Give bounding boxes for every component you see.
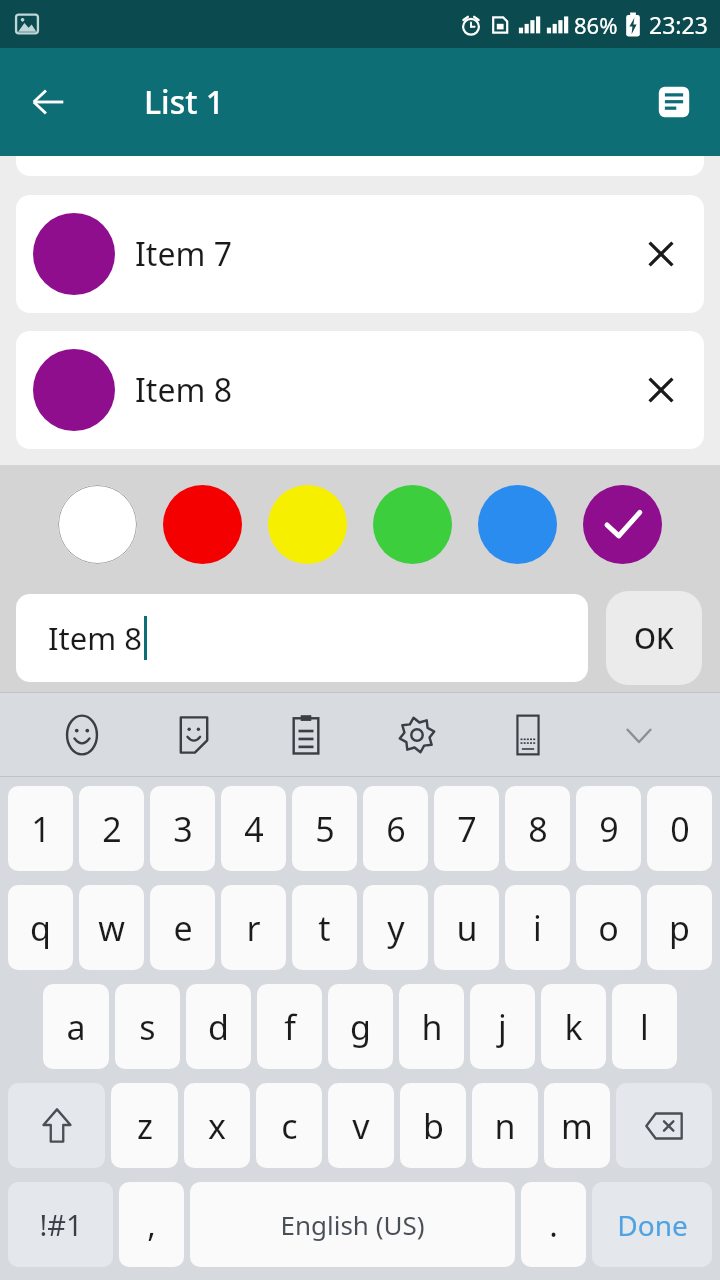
staticText: v <box>352 1103 370 1149</box>
staticText: 3 <box>173 806 193 852</box>
button[interactable]: OK <box>606 591 702 685</box>
button[interactable]: Settings <box>361 692 472 777</box>
button[interactable]: 2 <box>79 786 144 871</box>
button[interactable]: English (US) <box>190 1182 515 1267</box>
staticText: 86% <box>574 10 618 40</box>
staticText: 9 <box>599 806 619 852</box>
button[interactable]: f <box>257 984 322 1069</box>
button[interactable]: l <box>612 984 677 1069</box>
button[interactable]: Item 7 <box>16 195 704 313</box>
button[interactable]: 4 <box>221 786 286 871</box>
staticText: Item 7 <box>135 232 626 276</box>
button[interactable]: v <box>328 1083 394 1168</box>
button[interactable]: w <box>79 885 144 970</box>
button[interactable]: 5 <box>292 786 357 871</box>
staticText: English (US) <box>280 1207 425 1242</box>
staticText: a <box>66 1004 86 1050</box>
staticText: , <box>147 1203 156 1247</box>
button[interactable]: c <box>256 1083 322 1168</box>
staticText: 1 <box>31 806 51 852</box>
button[interactable]: q <box>8 885 73 970</box>
button[interactable]: Color 4 <box>373 485 452 564</box>
staticText: p <box>669 905 690 951</box>
staticText: t <box>318 905 331 951</box>
button[interactable]: s <box>115 984 180 1069</box>
staticText: !#1 <box>39 1205 83 1244</box>
staticText: Item 8 <box>135 368 626 412</box>
button[interactable]: 6 <box>363 786 428 871</box>
staticText: 8 <box>528 806 548 852</box>
staticText: o <box>598 905 619 951</box>
staticText: n <box>494 1103 516 1149</box>
button[interactable]: 0 <box>647 786 712 871</box>
staticText: Done <box>617 1206 688 1244</box>
button[interactable]: Emoji <box>26 692 138 777</box>
button[interactable]: i <box>505 885 570 970</box>
button[interactable]: Keyboard modes <box>472 692 583 777</box>
button[interactable]: z <box>111 1083 178 1168</box>
button[interactable]: u <box>434 885 499 970</box>
button[interactable]: m <box>544 1083 610 1168</box>
staticText: g <box>350 1004 371 1050</box>
staticText: r <box>246 905 261 951</box>
staticText: 5 <box>315 806 335 852</box>
button[interactable]: Hide keyboard <box>583 692 694 777</box>
button[interactable]: h <box>399 984 464 1069</box>
button[interactable]: a <box>43 984 109 1069</box>
button[interactable]: Item 8 <box>16 594 588 682</box>
button[interactable]: Done <box>592 1182 712 1267</box>
button[interactable]: 3 <box>150 786 215 871</box>
button[interactable]: . <box>521 1182 586 1267</box>
staticText: u <box>456 905 478 951</box>
button[interactable]: Delete Item 7 <box>626 219 696 289</box>
button[interactable]: p <box>647 885 712 970</box>
button[interactable]: j <box>470 984 535 1069</box>
staticText: 0 <box>670 806 690 852</box>
button[interactable]: g <box>328 984 393 1069</box>
staticText: 6 <box>386 806 406 852</box>
staticText: m <box>561 1103 593 1149</box>
button[interactable]: Clipboard <box>250 692 361 777</box>
staticText: . <box>549 1203 558 1247</box>
button[interactable]: List options <box>646 74 702 130</box>
button[interactable]: n <box>472 1083 538 1168</box>
button[interactable]: Color 6 <box>583 485 662 564</box>
staticText: 23:23 <box>649 9 708 40</box>
button[interactable]: Shift <box>8 1083 105 1168</box>
button[interactable]: e <box>150 885 215 970</box>
button[interactable]: Color 5 <box>478 485 557 564</box>
staticText: List 1 <box>144 80 225 124</box>
button[interactable]: , <box>119 1182 184 1267</box>
staticText: x <box>208 1103 226 1149</box>
staticText: i <box>533 905 542 951</box>
button[interactable]: x <box>184 1083 250 1168</box>
staticText: j <box>498 1004 507 1050</box>
button[interactable]: y <box>363 885 428 970</box>
button[interactable]: Color 1 <box>58 485 137 564</box>
button[interactable]: Back <box>20 74 76 130</box>
button[interactable]: b <box>400 1083 466 1168</box>
staticText: h <box>421 1004 443 1050</box>
button[interactable]: r <box>221 885 286 970</box>
button[interactable]: Delete Item 8 <box>626 355 696 425</box>
button[interactable]: o <box>576 885 641 970</box>
button[interactable]: Stickers <box>138 692 250 777</box>
button[interactable]: Item 8 <box>16 331 704 449</box>
button[interactable]: 7 <box>434 786 499 871</box>
staticText: f <box>284 1004 296 1050</box>
button[interactable]: t <box>292 885 357 970</box>
button[interactable]: 8 <box>505 786 570 871</box>
button[interactable]: d <box>186 984 251 1069</box>
staticText: l <box>640 1004 649 1050</box>
button[interactable]: Color 3 <box>268 485 347 564</box>
staticText: s <box>139 1004 156 1050</box>
button[interactable]: Color 2 <box>163 485 242 564</box>
staticText: k <box>564 1004 583 1050</box>
button[interactable]: 1 <box>8 786 73 871</box>
button[interactable]: k <box>541 984 606 1069</box>
staticText: e <box>173 905 193 951</box>
button[interactable]: 9 <box>576 786 641 871</box>
button[interactable]: Backspace <box>616 1083 712 1168</box>
button[interactable]: !#1 <box>8 1182 113 1267</box>
